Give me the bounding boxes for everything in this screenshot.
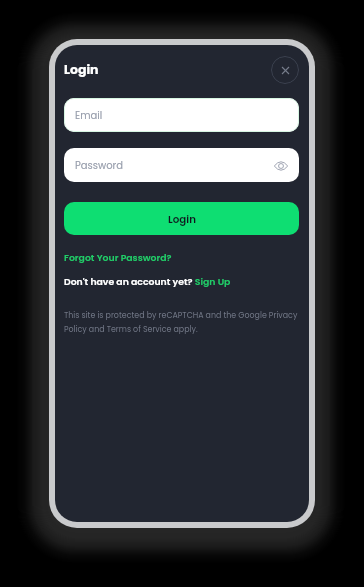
staticText: Forgot Your Password? bbox=[64, 251, 172, 264]
staticText: Login bbox=[168, 212, 196, 226]
staticText: Email bbox=[75, 108, 103, 122]
staticText: Password bbox=[75, 158, 124, 172]
button[interactable]: Password bbox=[64, 148, 299, 182]
button[interactable]: Don't have an account yet? Sign Up bbox=[64, 275, 231, 288]
button[interactable]: Close bbox=[271, 56, 299, 84]
staticText: Don't have an account yet? Sign Up bbox=[64, 275, 231, 288]
staticText: Login bbox=[64, 61, 99, 78]
button[interactable]: Show password bbox=[272, 157, 289, 174]
button[interactable]: Forgot Your Password? bbox=[64, 251, 172, 264]
staticText: This site is protected by reCAPTCHA and … bbox=[64, 310, 304, 334]
button[interactable]: Login bbox=[64, 202, 299, 235]
button[interactable]: Email bbox=[64, 98, 299, 132]
